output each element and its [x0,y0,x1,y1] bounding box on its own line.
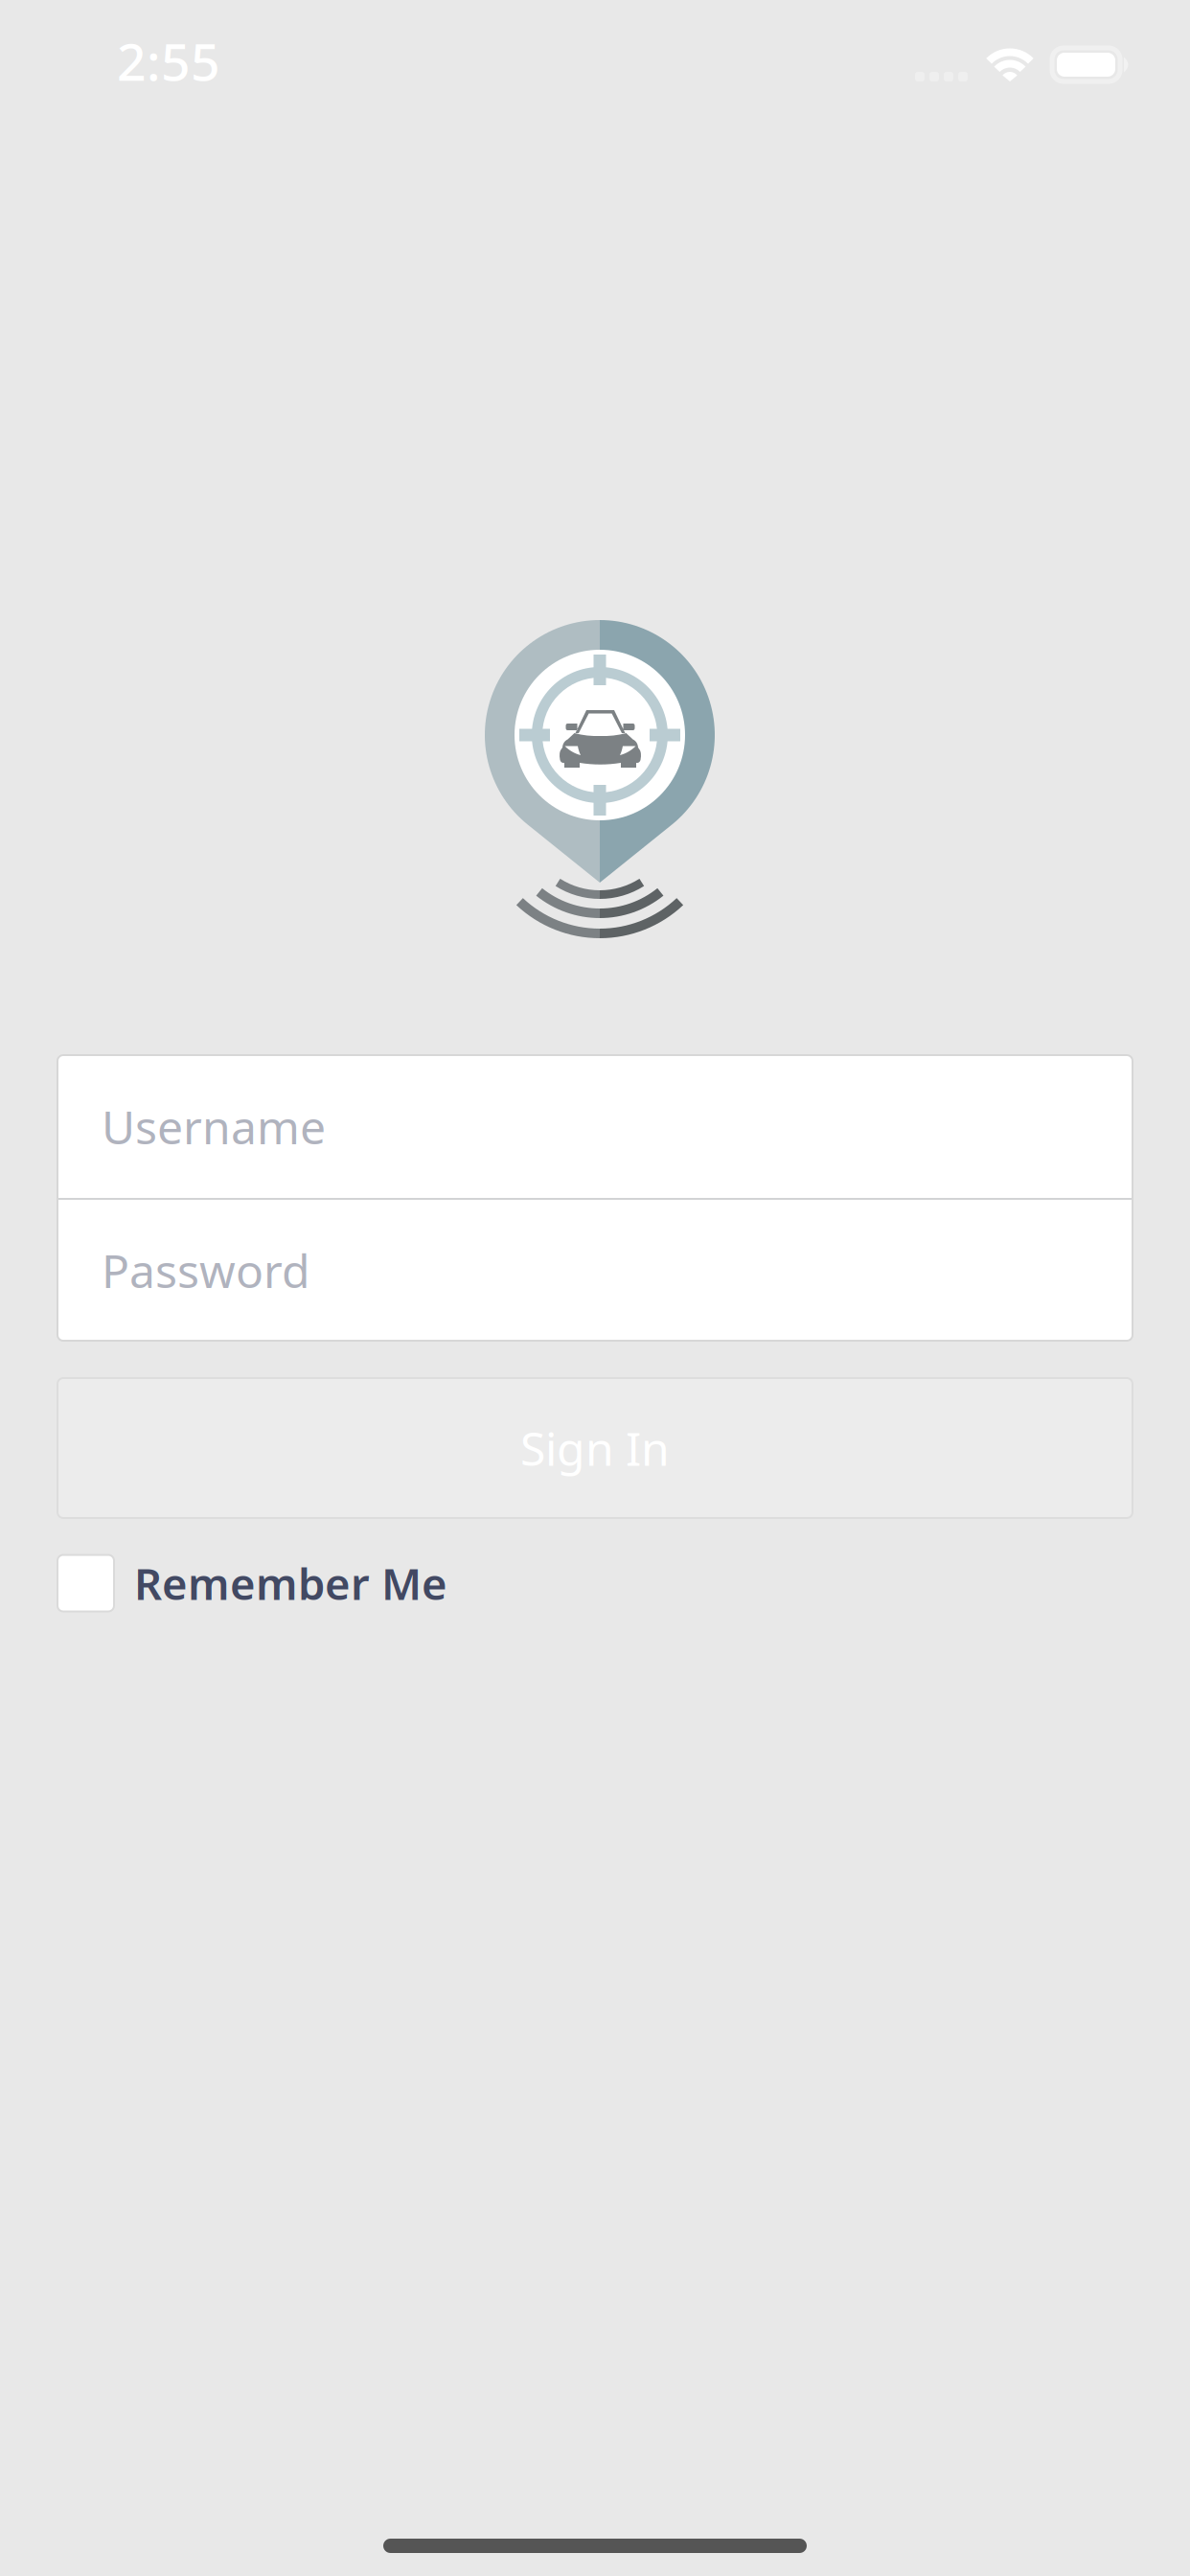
staticText: Password [102,1240,310,1301]
staticText: 2:55 [117,27,220,95]
button[interactable]: Password [57,1200,1133,1341]
staticText: Username [102,1096,326,1157]
button[interactable]: Username [57,1055,1133,1198]
button[interactable]: Remember Me [57,1555,1133,1611]
staticText: Sign In [520,1417,670,1479]
staticText: Remember Me [134,1554,447,1612]
